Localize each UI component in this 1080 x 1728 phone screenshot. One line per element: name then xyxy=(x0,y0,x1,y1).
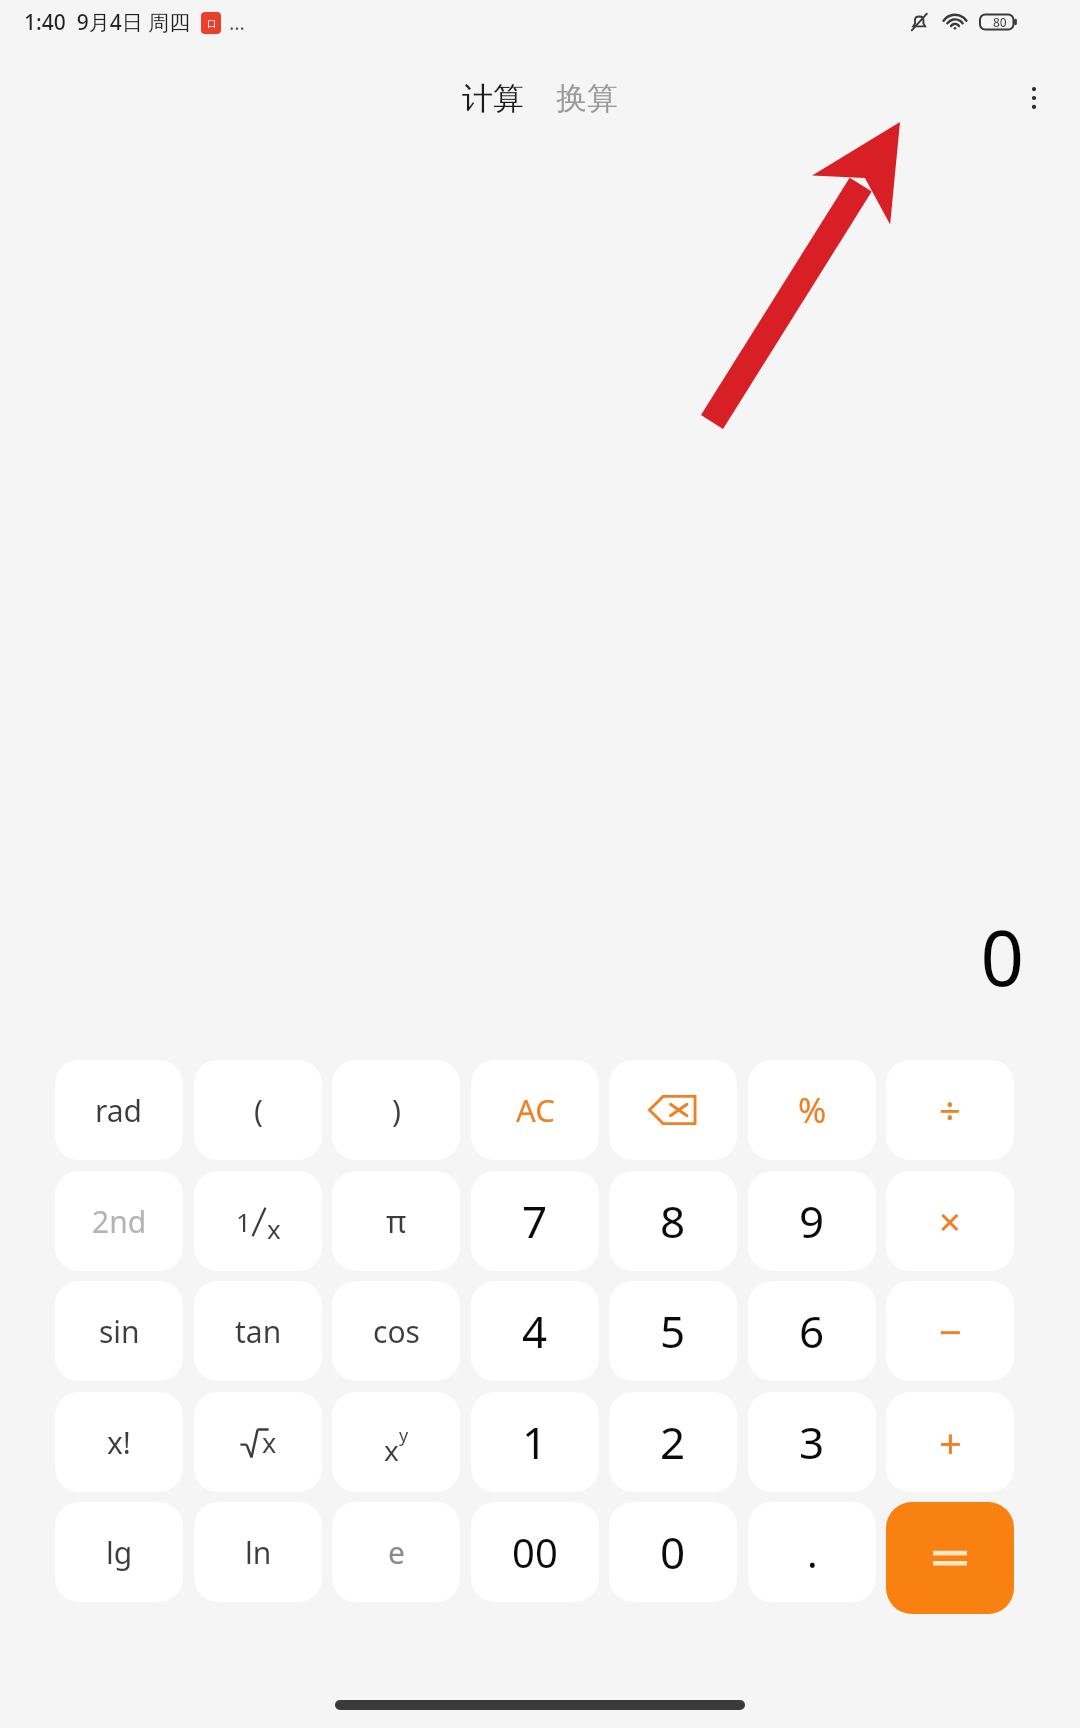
staticText: 0 xyxy=(980,905,1024,995)
button[interactable]: Backspace xyxy=(609,1060,737,1160)
button[interactable]: e xyxy=(332,1502,460,1602)
staticText: × xyxy=(939,1195,961,1247)
staticText: 9 xyxy=(799,1191,825,1251)
button[interactable]: 0 xyxy=(609,1502,737,1602)
button[interactable]: 计算 xyxy=(454,73,532,124)
button[interactable]: + xyxy=(886,1392,1014,1492)
button[interactable]: ( xyxy=(194,1060,322,1160)
staticText: 0 xyxy=(660,1522,686,1582)
staticText: 计算 xyxy=(462,79,524,118)
staticText: lg xyxy=(106,1532,133,1573)
staticText: 1 xyxy=(236,1204,251,1239)
staticText: % xyxy=(798,1087,827,1133)
staticText: cos xyxy=(373,1311,420,1352)
button[interactable]: x to the power y xyxy=(332,1392,460,1492)
staticText: 6 xyxy=(799,1301,825,1361)
button[interactable]: cos xyxy=(332,1281,460,1381)
button[interactable]: 9 xyxy=(748,1171,876,1271)
staticText: x! xyxy=(107,1422,131,1463)
staticText: 2 xyxy=(660,1412,686,1472)
button[interactable]: ) xyxy=(332,1060,460,1160)
staticText: x xyxy=(267,1211,281,1246)
staticText: 7 xyxy=(522,1191,548,1251)
staticText: x xyxy=(262,1424,277,1461)
staticText: + xyxy=(939,1415,962,1469)
button[interactable]: π xyxy=(332,1171,460,1271)
button[interactable]: 3 xyxy=(748,1392,876,1492)
button[interactable]: . xyxy=(748,1502,876,1602)
staticText: ÷ xyxy=(939,1084,961,1136)
staticText: 4 xyxy=(522,1301,548,1361)
button[interactable]: One over x xyxy=(194,1171,322,1271)
staticText: … xyxy=(229,9,245,36)
staticText: 2nd xyxy=(92,1201,147,1242)
button[interactable]: tan xyxy=(194,1281,322,1381)
staticText: ln xyxy=(245,1532,272,1573)
staticText: 1:40 9月4日 周四 xyxy=(24,8,191,37)
staticText: ) xyxy=(392,1090,401,1131)
staticText: 换算 xyxy=(556,79,618,118)
staticText: 00 xyxy=(512,1525,558,1579)
staticText: 1 xyxy=(522,1412,548,1472)
staticText: y xyxy=(399,1423,409,1448)
button[interactable]: ÷ xyxy=(886,1060,1014,1160)
staticText: rad xyxy=(95,1090,143,1131)
staticText: . xyxy=(807,1525,818,1579)
button[interactable]: lg xyxy=(55,1502,183,1602)
button[interactable]: 换算 xyxy=(548,73,626,124)
button[interactable]: − xyxy=(886,1281,1014,1381)
staticText: e xyxy=(388,1532,405,1573)
staticText: 3 xyxy=(799,1412,825,1472)
staticText: 5 xyxy=(660,1301,686,1361)
button[interactable]: More options xyxy=(1006,70,1062,126)
button[interactable]: 4 xyxy=(471,1281,599,1381)
button[interactable]: % xyxy=(748,1060,876,1160)
staticText: tan xyxy=(235,1311,282,1352)
button[interactable]: ln xyxy=(194,1502,322,1602)
staticText: x xyxy=(384,1431,399,1469)
button[interactable]: 00 xyxy=(471,1502,599,1602)
staticText: 80 xyxy=(993,14,1007,30)
staticText: − xyxy=(939,1304,962,1358)
button[interactable]: 1 xyxy=(471,1392,599,1492)
staticText: 口 xyxy=(207,18,216,29)
button[interactable]: 5 xyxy=(609,1281,737,1381)
button[interactable]: Square root xyxy=(194,1392,322,1492)
button[interactable]: rad xyxy=(55,1060,183,1160)
staticText: sin xyxy=(99,1311,140,1352)
button[interactable]: 2nd xyxy=(55,1171,183,1271)
button[interactable] xyxy=(886,1502,1014,1614)
button[interactable]: × xyxy=(886,1171,1014,1271)
staticText: ( xyxy=(254,1090,263,1131)
button[interactable]: 2 xyxy=(609,1392,737,1492)
staticText: π xyxy=(386,1200,407,1242)
button[interactable]: 7 xyxy=(471,1171,599,1271)
staticText: 8 xyxy=(660,1191,686,1251)
button[interactable]: x! xyxy=(55,1392,183,1492)
button[interactable]: 6 xyxy=(748,1281,876,1381)
button[interactable]: AC xyxy=(471,1060,599,1160)
button[interactable]: sin xyxy=(55,1281,183,1381)
staticText: AC xyxy=(516,1089,555,1131)
button[interactable]: 8 xyxy=(609,1171,737,1271)
